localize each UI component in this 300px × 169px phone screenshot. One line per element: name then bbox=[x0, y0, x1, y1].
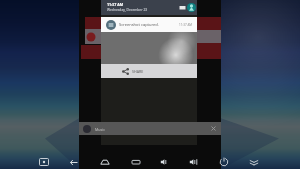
button[interactable]: User profile bbox=[187, 3, 196, 12]
staticText: Wednesday, December 23 bbox=[107, 7, 148, 11]
button[interactable]: Home bbox=[100, 157, 110, 167]
button[interactable]: Volume down bbox=[160, 157, 170, 167]
button[interactable]: Take screenshot bbox=[39, 157, 49, 167]
button[interactable]: Music bbox=[79, 122, 221, 135]
button[interactable]: Power bbox=[219, 157, 229, 167]
staticText: SHARE bbox=[132, 69, 144, 74]
staticText: 11:37 AM bbox=[179, 23, 193, 27]
button[interactable]: SHARE bbox=[101, 64, 197, 78]
staticText: 11:37 AM bbox=[107, 2, 124, 7]
button[interactable]: Settings bbox=[178, 3, 187, 12]
button[interactable]: Dismiss bbox=[210, 125, 217, 132]
staticText: Screenshot captured. bbox=[119, 22, 159, 27]
button[interactable]: Recents bbox=[131, 157, 141, 167]
button[interactable]: Volume up bbox=[189, 157, 199, 167]
button[interactable]: More bbox=[249, 157, 259, 167]
button[interactable]: Screenshot captured. bbox=[101, 17, 197, 78]
staticText: Music bbox=[95, 127, 105, 132]
button[interactable]: Back bbox=[69, 157, 79, 167]
